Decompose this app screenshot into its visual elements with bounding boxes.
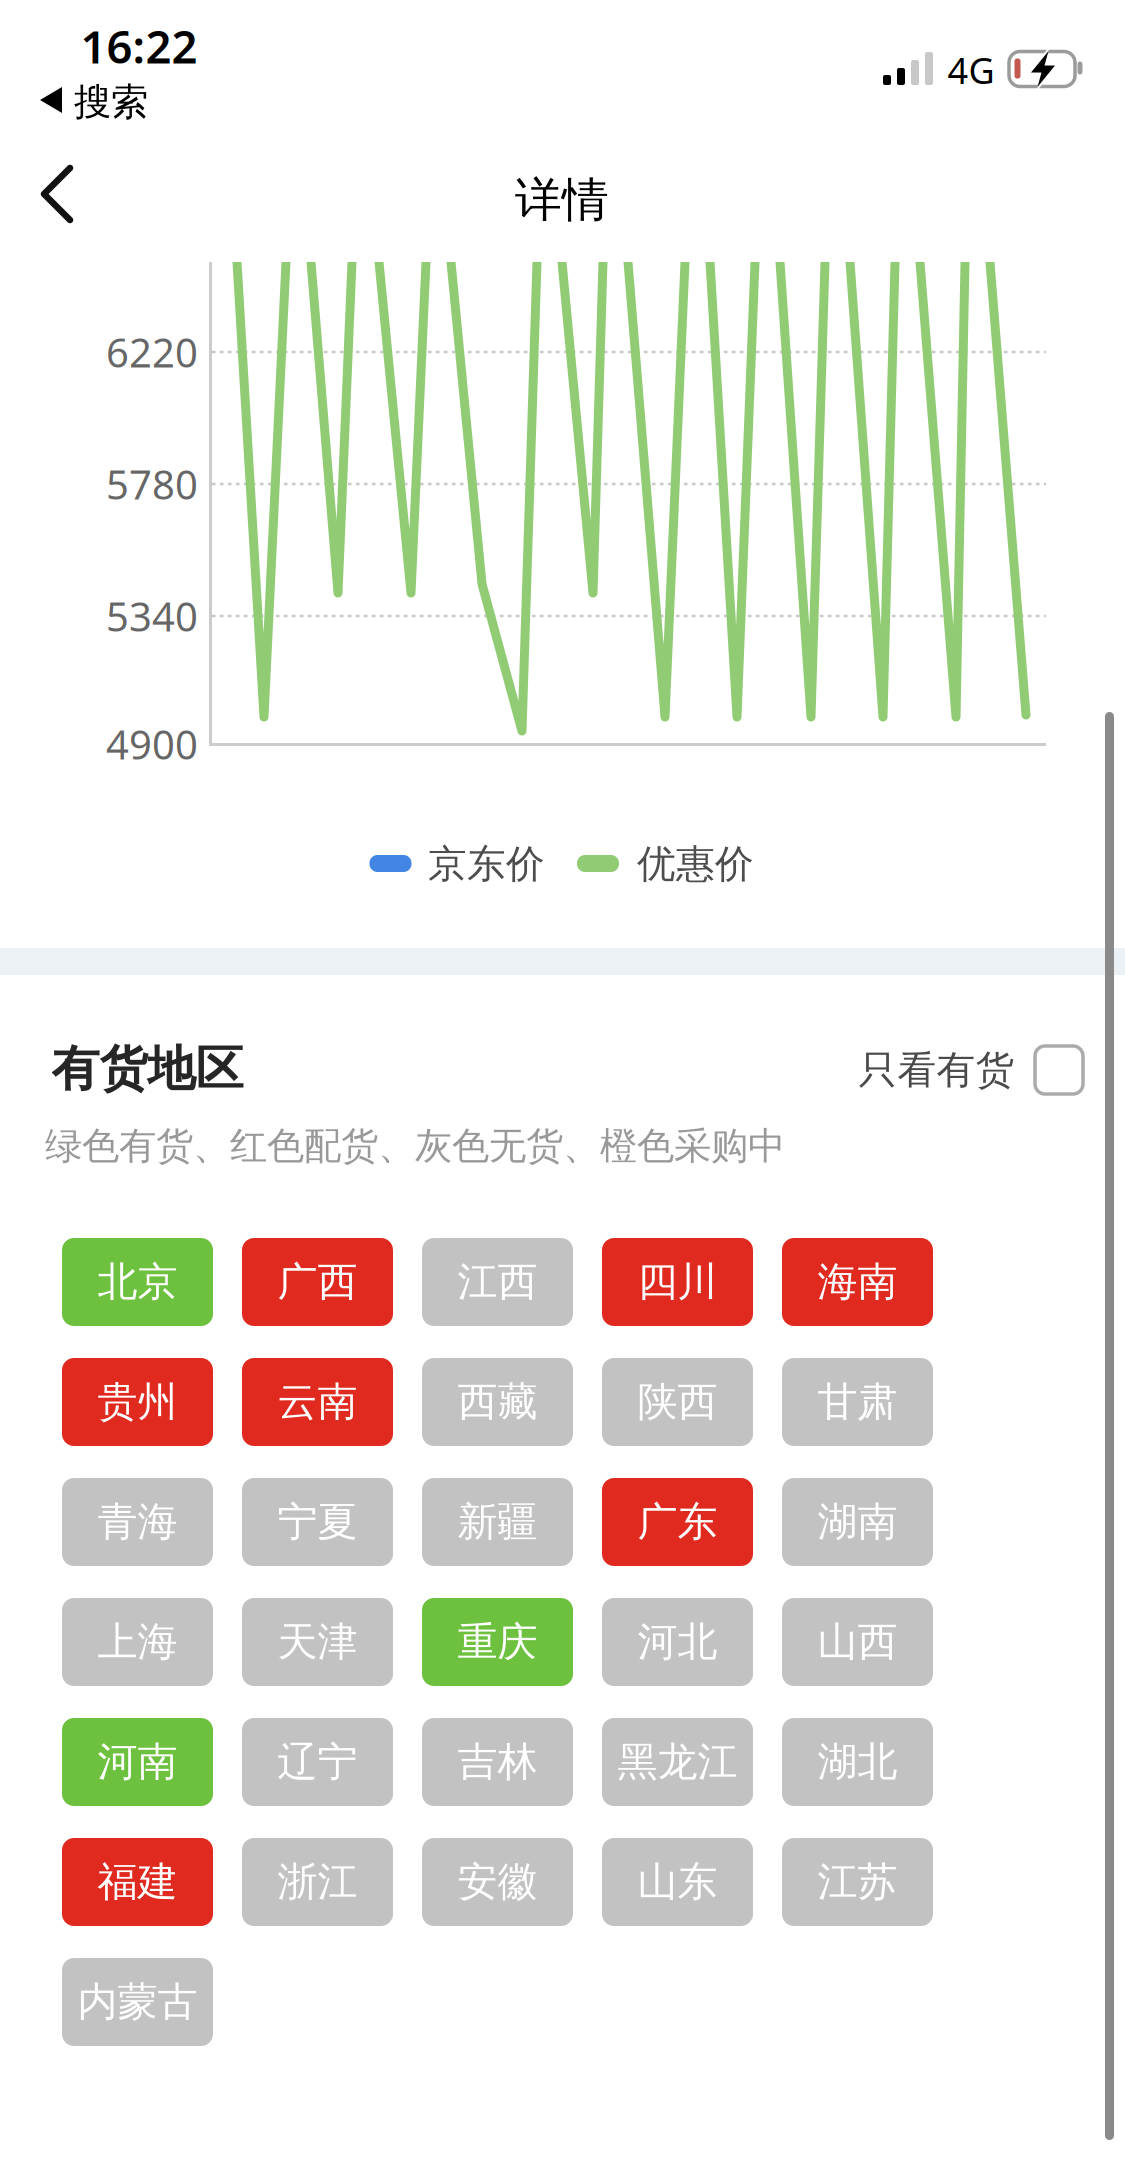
button[interactable]: 北京 (62, 1238, 213, 1326)
staticText: 湖北 (817, 1737, 897, 1786)
button[interactable]: 山西 (782, 1598, 933, 1686)
button[interactable]: 广西 (242, 1238, 393, 1326)
staticText: 京东价 (428, 840, 545, 888)
staticText: 宁夏 (277, 1497, 357, 1546)
staticText: 吉林 (457, 1737, 537, 1786)
staticText: 江西 (457, 1257, 537, 1306)
staticText: 新疆 (457, 1497, 537, 1546)
staticText: 内蒙古 (77, 1977, 197, 2026)
staticText: 4900 (106, 717, 198, 770)
staticText: 5340 (106, 589, 198, 642)
staticText: 搜索 (74, 79, 148, 125)
staticText: 北京 (97, 1257, 177, 1306)
button[interactable]: 四川 (602, 1238, 753, 1326)
button[interactable]: 青海 (62, 1478, 213, 1566)
staticText: 6220 (106, 325, 198, 378)
staticText: 4G (947, 46, 994, 94)
staticText: 四川 (637, 1257, 717, 1306)
button[interactable]: 海南 (782, 1238, 933, 1326)
button[interactable]: 重庆 (422, 1598, 573, 1686)
staticText: 广西 (277, 1257, 357, 1306)
button[interactable]: 新疆 (422, 1478, 573, 1566)
button[interactable]: 西藏 (422, 1358, 573, 1446)
button[interactable]: 吉林 (422, 1718, 573, 1806)
button[interactable]: 宁夏 (242, 1478, 393, 1566)
staticText: 福建 (97, 1857, 177, 1906)
button[interactable]: 贵州 (62, 1358, 213, 1446)
button[interactable]: 返回 (40, 165, 74, 223)
button[interactable]: 黑龙江 (602, 1718, 753, 1806)
button[interactable]: 山东 (602, 1838, 753, 1926)
button[interactable]: 福建 (62, 1838, 213, 1926)
button[interactable]: 湖南 (782, 1478, 933, 1566)
button[interactable]: 河北 (602, 1598, 753, 1686)
staticText: 广东 (637, 1497, 717, 1546)
staticText: 云南 (277, 1377, 357, 1426)
staticText: 贵州 (97, 1377, 177, 1426)
staticText: 河北 (637, 1617, 717, 1666)
staticText: 青海 (97, 1497, 177, 1546)
staticText: 上海 (97, 1617, 177, 1666)
button[interactable]: 上海 (62, 1598, 213, 1686)
button[interactable]: 辽宁 (242, 1718, 393, 1806)
staticText: 有货地区 (51, 1039, 243, 1098)
button[interactable]: 江西 (422, 1238, 573, 1326)
button[interactable]: 内蒙古 (62, 1958, 213, 2046)
staticText: 重庆 (457, 1617, 537, 1666)
staticText: 山西 (817, 1617, 897, 1666)
button[interactable]: 湖北 (782, 1718, 933, 1806)
button[interactable]: 陕西 (602, 1358, 753, 1446)
button[interactable]: 甘肃 (782, 1358, 933, 1446)
staticText: 陕西 (637, 1377, 717, 1426)
staticText: 只看有货 (858, 1046, 1014, 1094)
staticText: 甘肃 (817, 1377, 897, 1426)
staticText: 河南 (97, 1737, 177, 1786)
staticText: 5780 (106, 457, 198, 510)
button[interactable]: 江苏 (782, 1838, 933, 1926)
button[interactable]: 广东 (602, 1478, 753, 1566)
staticText: 浙江 (277, 1857, 357, 1906)
staticText: 西藏 (457, 1377, 537, 1426)
staticText: 详情 (515, 171, 609, 229)
staticText: 16:22 (80, 16, 197, 76)
staticText: 江苏 (817, 1857, 897, 1906)
button[interactable]: 浙江 (242, 1838, 393, 1926)
button[interactable]: 云南 (242, 1358, 393, 1446)
staticText: 湖南 (817, 1497, 897, 1546)
staticText: 天津 (277, 1617, 357, 1666)
staticText: 海南 (817, 1257, 897, 1306)
staticText: 优惠价 (637, 840, 754, 888)
button[interactable]: 河南 (62, 1718, 213, 1806)
staticText: 黑龙江 (617, 1737, 737, 1786)
button[interactable]: 返回 搜索 (40, 86, 148, 116)
staticText: 山东 (637, 1857, 717, 1906)
staticText: 辽宁 (277, 1737, 357, 1786)
staticText: 绿色有货、红色配货、灰色无货、橙色采购中 (45, 1123, 785, 1169)
button[interactable]: 安徽 (422, 1838, 573, 1926)
staticText: 安徽 (457, 1857, 537, 1906)
button[interactable]: 天津 (242, 1598, 393, 1686)
button[interactable]: 只看有货 (1035, 1046, 1083, 1094)
